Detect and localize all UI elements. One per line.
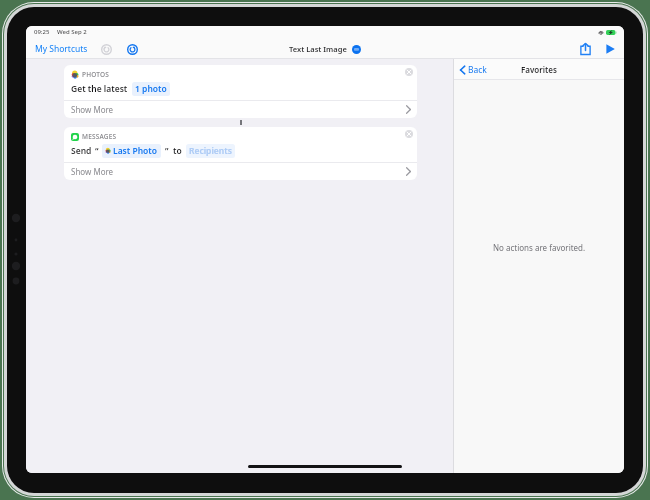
staticText: to bbox=[173, 145, 182, 157]
staticText: Show More bbox=[71, 104, 114, 115]
staticText: My Shortcuts bbox=[35, 43, 88, 55]
button[interactable]: Show More bbox=[64, 163, 417, 180]
button[interactable]: Share bbox=[576, 40, 594, 58]
staticText: Recipients bbox=[189, 145, 232, 157]
staticText: No actions are favorited. bbox=[493, 242, 586, 253]
staticText: Last Photo bbox=[113, 145, 158, 157]
staticText: “ bbox=[95, 145, 99, 157]
button[interactable]: Redo bbox=[125, 42, 140, 57]
button[interactable]: MESSAGES bbox=[64, 127, 417, 180]
staticText: ” bbox=[165, 145, 169, 157]
staticText: Get the latest bbox=[71, 83, 128, 95]
staticText: Wed Sep 2 bbox=[57, 28, 87, 36]
staticText: 1 photo bbox=[135, 83, 167, 95]
button[interactable]: Back bbox=[457, 61, 489, 79]
staticText: MESSAGES bbox=[82, 132, 117, 141]
staticText: Favorites bbox=[521, 64, 557, 75]
button[interactable]: Show More bbox=[64, 101, 417, 118]
button[interactable]: Undo bbox=[99, 42, 114, 57]
staticText: Send bbox=[71, 145, 92, 157]
staticText: Text Last Image bbox=[289, 44, 347, 54]
staticText: Back bbox=[468, 64, 487, 76]
button[interactable]: PHOTOS bbox=[64, 65, 417, 118]
staticText: PHOTOS bbox=[82, 70, 110, 79]
button[interactable]: My Shortcuts bbox=[30, 39, 93, 59]
staticText: Show More bbox=[71, 166, 114, 177]
button[interactable]: Text Last Image bbox=[287, 42, 363, 56]
button[interactable]: Remove action bbox=[405, 130, 413, 138]
staticText: 09:25 bbox=[34, 28, 50, 36]
button[interactable]: Run shortcut bbox=[601, 40, 619, 58]
button[interactable]: Remove action bbox=[405, 68, 413, 76]
